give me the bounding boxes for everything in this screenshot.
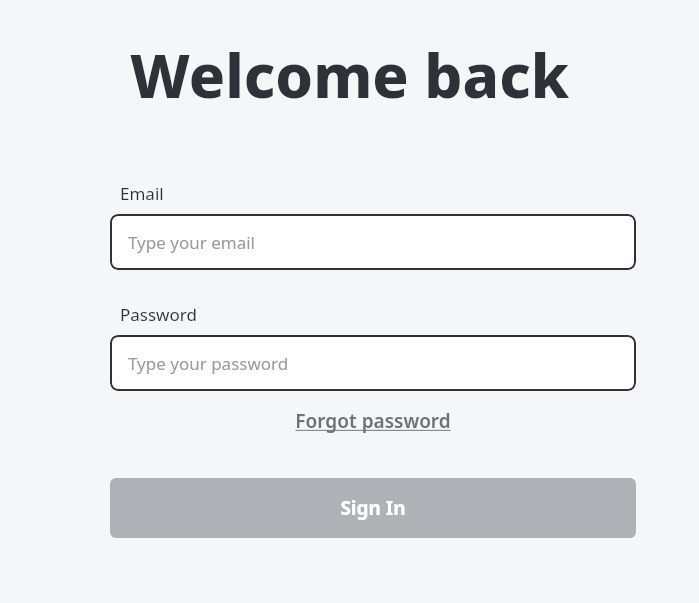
button[interactable]: Password input bbox=[110, 335, 636, 391]
staticText: Password bbox=[120, 303, 197, 326]
button[interactable]: Sign In bbox=[110, 478, 636, 538]
staticText: Email bbox=[120, 182, 164, 205]
staticText: Type your email bbox=[128, 231, 255, 254]
button[interactable]: Email input bbox=[110, 214, 636, 270]
staticText: Sign In bbox=[340, 495, 406, 521]
button[interactable]: Forgot password bbox=[110, 408, 636, 434]
staticText: Type your password bbox=[128, 352, 289, 375]
staticText: Welcome back bbox=[0, 34, 699, 116]
staticText: Forgot password bbox=[295, 408, 451, 434]
